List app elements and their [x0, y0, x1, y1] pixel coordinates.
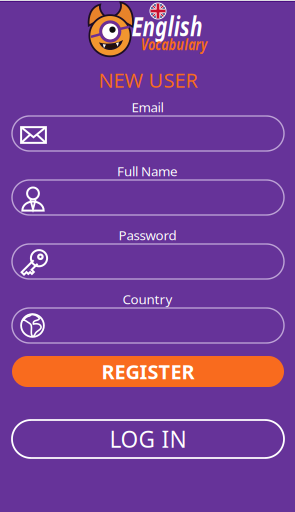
staticText: Vocabulary [132, 33, 216, 55]
staticText: LOG IN [109, 424, 186, 454]
staticText: Password [118, 226, 176, 244]
button[interactable] [12, 180, 284, 215]
button[interactable] [12, 116, 284, 151]
staticText: Email [131, 98, 163, 116]
staticText: NEW USER [98, 67, 197, 93]
staticText: Full Name [117, 162, 178, 180]
staticText: Country [122, 290, 172, 308]
staticText: English [121, 8, 212, 44]
staticText: REGISTER [101, 358, 194, 385]
button[interactable] [12, 244, 284, 279]
button[interactable] [12, 308, 284, 343]
button[interactable]: LOG IN [12, 420, 284, 458]
button[interactable]: REGISTER [12, 356, 284, 387]
